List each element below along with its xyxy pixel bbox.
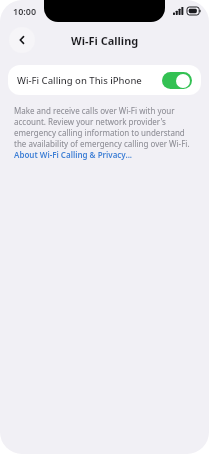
button[interactable]: Back [9,27,35,53]
button[interactable]: Make and receive calls over Wi-Fi with y… [14,105,195,160]
button[interactable]: Wi-Fi Calling on This iPhone [8,65,201,95]
staticText: Wi-Fi Calling [71,33,139,48]
button[interactable]: Wi-Fi Calling toggle [162,72,192,89]
staticText: Wi-Fi Calling on This iPhone [17,74,142,87]
staticText: 10:00 [13,5,37,17]
